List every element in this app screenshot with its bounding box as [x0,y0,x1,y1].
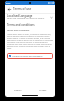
staticText: Lorem ipsum dolor sit amet, consectetur … [7,33,53,49]
staticText: 9:41 [6,2,11,5]
staticText: Localised Language [7,14,33,18]
button[interactable]: Accept [30,87,55,94]
button[interactable]: Localised Language [5,14,55,21]
staticText: I accept the terms and conditions [12,55,43,58]
button[interactable]: I accept the terms and conditions [7,53,53,59]
button[interactable]: Cancel [5,87,30,94]
staticText: Terms and conditions [7,29,30,32]
button[interactable]: Back [7,7,12,12]
staticText: Terms and conditions [7,23,35,27]
staticText: Accept [39,89,47,92]
staticText: Cancel [14,89,22,92]
button[interactable]: Terms and conditions [5,21,55,29]
staticText: Terms of use [13,7,32,11]
staticText: Select the language you want to read in [7,17,45,20]
